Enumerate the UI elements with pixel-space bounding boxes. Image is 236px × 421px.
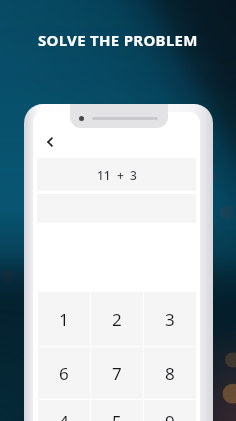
staticText: 6	[59, 362, 69, 385]
staticText: 9	[165, 410, 175, 421]
button[interactable]: 1	[38, 292, 90, 346]
staticText: 2	[112, 308, 122, 331]
button[interactable]: 8	[144, 347, 196, 399]
staticText: 8	[165, 362, 175, 385]
staticText: 1	[59, 308, 69, 331]
staticText: 11 + 3	[97, 167, 137, 183]
button[interactable]: 3	[144, 292, 196, 346]
button[interactable]: 6	[38, 347, 90, 399]
staticText: 7	[112, 362, 122, 385]
button[interactable]: 5	[91, 400, 143, 421]
button[interactable]: 11 + 3	[37, 158, 196, 191]
staticText: SOLVE THE PROBLEM	[38, 30, 198, 50]
staticText: 3	[165, 308, 175, 331]
button[interactable]: 2	[91, 292, 143, 346]
button[interactable]: 9	[144, 400, 196, 421]
staticText: 5	[112, 410, 122, 421]
button[interactable]: Back	[33, 126, 67, 158]
button[interactable]: 7	[91, 347, 143, 399]
button[interactable]: 4	[38, 400, 90, 421]
staticText: 4	[59, 410, 69, 421]
